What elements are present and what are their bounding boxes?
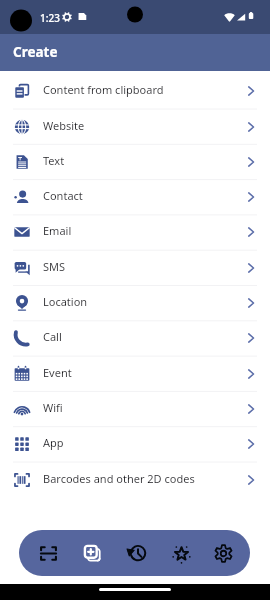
button[interactable]: Scan xyxy=(28,530,68,576)
staticText: Email xyxy=(43,223,72,238)
button[interactable]: SMS xyxy=(0,251,270,285)
button[interactable]: History xyxy=(116,530,156,576)
staticText: Location xyxy=(43,294,88,309)
button[interactable]: Create xyxy=(72,530,112,576)
button[interactable]: Favourites xyxy=(161,530,201,576)
button[interactable]: Website xyxy=(0,110,270,144)
staticText: SMS xyxy=(43,259,66,274)
staticText: Text xyxy=(43,153,65,168)
button[interactable]: Text xyxy=(0,145,270,179)
button[interactable]: Call xyxy=(0,321,270,355)
staticText: 1:23 xyxy=(40,11,60,25)
button[interactable]: Content from clipboard xyxy=(0,74,270,108)
button[interactable]: Event xyxy=(0,357,270,391)
staticText: Website xyxy=(43,118,85,133)
button[interactable]: Wifi xyxy=(0,392,270,426)
staticText: Wifi xyxy=(43,400,63,415)
staticText: Contact xyxy=(43,188,83,203)
staticText: Create xyxy=(13,43,58,61)
staticText: Event xyxy=(43,365,72,380)
button[interactable]: App xyxy=(0,427,270,461)
staticText: Content from clipboard xyxy=(43,82,164,97)
button[interactable]: Settings xyxy=(203,530,243,576)
staticText: Call xyxy=(43,329,62,344)
button[interactable]: Contact xyxy=(0,180,270,214)
button[interactable]: Create xyxy=(0,34,270,71)
button[interactable]: Barcodes and other 2D codes xyxy=(0,463,270,497)
staticText: Barcodes and other 2D codes xyxy=(43,471,195,486)
button[interactable]: Email xyxy=(0,215,270,249)
button[interactable]: Location xyxy=(0,286,270,320)
staticText: App xyxy=(43,435,64,450)
